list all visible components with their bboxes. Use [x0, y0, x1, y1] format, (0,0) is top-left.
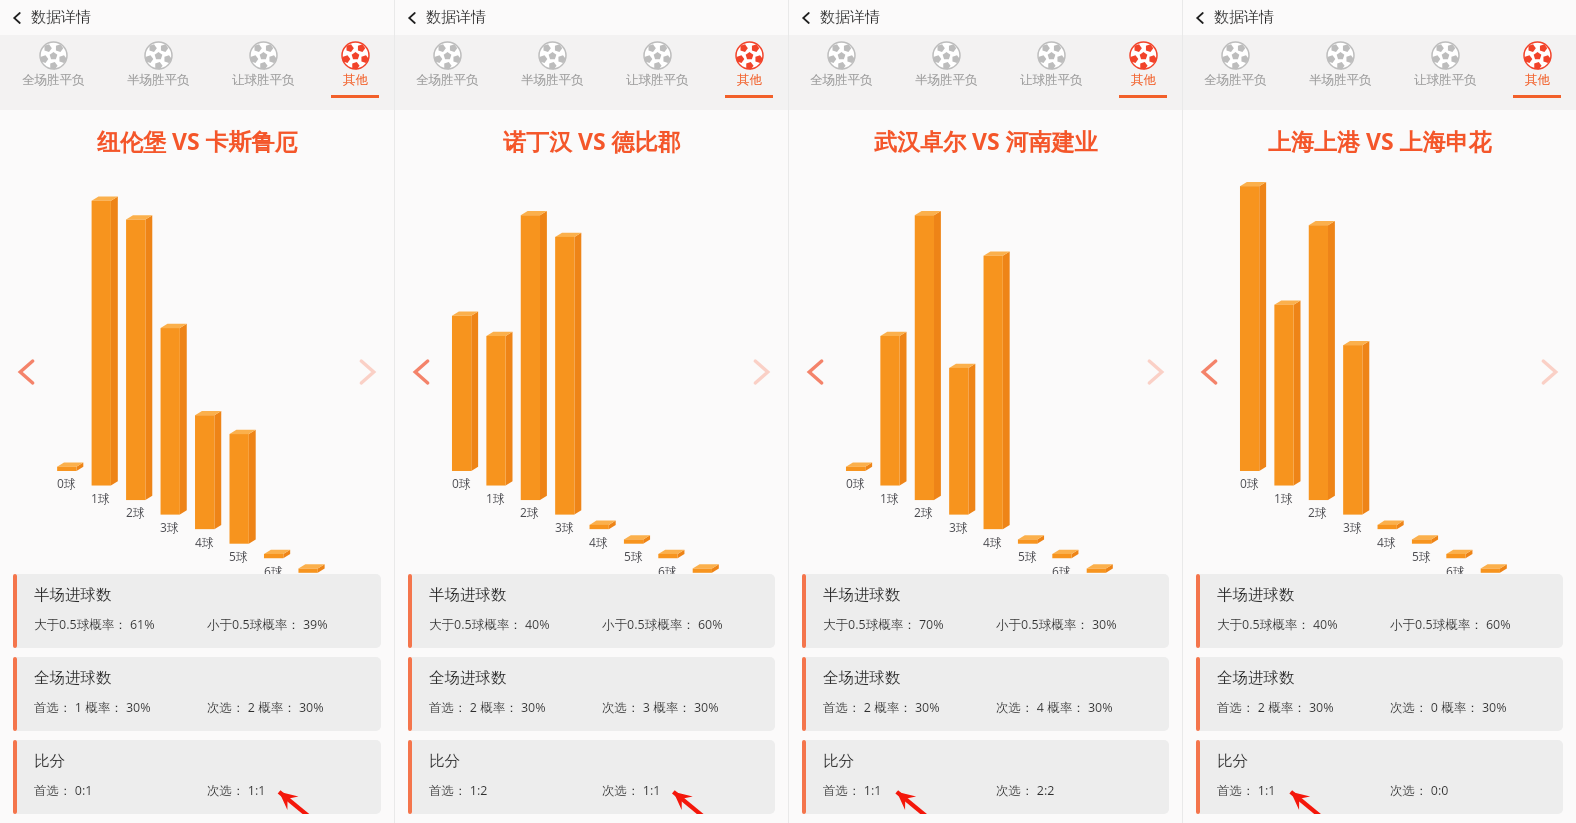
- button[interactable]: Back: [395, 3, 498, 32]
- button[interactable]: 全场胜平负: [1183, 35, 1288, 110]
- button[interactable]: Next: [346, 351, 388, 393]
- button[interactable]: 全场进球数: [1196, 657, 1563, 731]
- staticText: 全场进球数: [823, 668, 901, 688]
- staticText: 首选： 2 概率： 30%: [823, 699, 940, 716]
- staticText: 让球胜平负: [1020, 72, 1083, 88]
- staticText: 首选： 1:2: [429, 782, 488, 799]
- staticText: 0球: [452, 475, 471, 491]
- staticText: 全场进球数: [429, 668, 507, 688]
- staticText: 6球: [264, 563, 283, 579]
- staticText: 首选： 2 概率： 30%: [429, 699, 546, 716]
- button[interactable]: 其他: [1498, 35, 1576, 110]
- button[interactable]: Back: [1183, 3, 1286, 32]
- button[interactable]: 半场进球数: [1196, 574, 1563, 648]
- button[interactable]: 半场进球数: [408, 574, 775, 648]
- button[interactable]: 全场进球数: [13, 657, 381, 731]
- staticText: 其他: [737, 72, 762, 88]
- staticText: 3球: [160, 519, 179, 535]
- staticText: 次选： 3 概率： 30%: [602, 699, 719, 716]
- button[interactable]: 比分: [1196, 740, 1563, 814]
- button[interactable]: 全场胜平负: [789, 35, 894, 110]
- button[interactable]: 全场进球数: [802, 657, 1169, 731]
- staticText: 6球: [1446, 563, 1465, 579]
- button[interactable]: 让球胜平负: [211, 35, 316, 110]
- staticText: 次选： 1:1: [207, 782, 266, 799]
- button[interactable]: Back: [0, 3, 103, 32]
- button[interactable]: 比分: [802, 740, 1169, 814]
- button[interactable]: Next: [1528, 351, 1570, 393]
- button[interactable]: 半场进球数: [802, 574, 1169, 648]
- button[interactable]: 让球胜平负: [1393, 35, 1498, 110]
- staticText: 半场进球数: [429, 585, 507, 605]
- button[interactable]: 比分: [408, 740, 775, 814]
- button[interactable]: 其他: [1104, 35, 1182, 110]
- button[interactable]: Previous: [1189, 351, 1231, 393]
- staticText: 让球胜平负: [1414, 72, 1477, 88]
- button[interactable]: Previous: [401, 351, 443, 393]
- staticText: 首选： 1 概率： 30%: [34, 699, 151, 716]
- other: Back: [1195, 13, 1205, 23]
- staticText: 全场胜平负: [22, 72, 85, 88]
- staticText: 2球: [914, 504, 933, 520]
- other: Back: [12, 13, 22, 23]
- button[interactable]: 全场胜平负: [0, 35, 106, 110]
- staticText: 2球: [1308, 504, 1327, 520]
- staticText: 首选： 1:1: [1217, 782, 1276, 799]
- staticText: 5球: [229, 548, 248, 564]
- staticText: 小于0.5球概率： 30%: [996, 616, 1117, 633]
- staticText: 5球: [1412, 548, 1431, 564]
- staticText: 半场进球数: [34, 585, 112, 605]
- button[interactable]: 让球胜平负: [999, 35, 1104, 110]
- button[interactable]: Next: [740, 351, 782, 393]
- button[interactable]: 其他: [710, 35, 788, 110]
- staticText: 半场胜平负: [521, 72, 584, 88]
- staticText: 半场进球数: [1217, 585, 1295, 605]
- staticText: 4球: [589, 534, 608, 550]
- staticText: 次选： 2 概率： 30%: [207, 699, 324, 716]
- button[interactable]: 让球胜平负: [605, 35, 710, 110]
- staticText: 5球: [624, 548, 643, 564]
- staticText: 大于0.5球概率： 40%: [1217, 616, 1338, 633]
- staticText: 1球: [486, 490, 505, 506]
- staticText: 数据详情: [31, 8, 91, 27]
- button[interactable]: Back: [789, 3, 892, 32]
- button[interactable]: 半场胜平负: [500, 35, 605, 110]
- staticText: 比分: [429, 751, 460, 771]
- staticText: 次选： 4 概率： 30%: [996, 699, 1113, 716]
- button[interactable]: 比分: [13, 740, 381, 814]
- button[interactable]: 半场进球数: [13, 574, 381, 648]
- button[interactable]: 半场胜平负: [894, 35, 999, 110]
- staticText: 次选： 1:1: [602, 782, 661, 799]
- button[interactable]: 半场胜平负: [106, 35, 211, 110]
- staticText: 诺丁汉 VS 德比郡: [503, 125, 681, 156]
- staticText: 3球: [1343, 519, 1362, 535]
- button[interactable]: 全场胜平负: [395, 35, 500, 110]
- staticText: 半场胜平负: [915, 72, 978, 88]
- button[interactable]: Previous: [795, 351, 837, 393]
- staticText: 3球: [949, 519, 968, 535]
- button[interactable]: Previous: [6, 351, 48, 393]
- button[interactable]: 半场胜平负: [1288, 35, 1393, 110]
- staticText: 次选： 0 概率： 30%: [1390, 699, 1507, 716]
- staticText: 比分: [34, 751, 65, 771]
- staticText: 比分: [1217, 751, 1248, 771]
- staticText: 首选： 0:1: [34, 782, 93, 799]
- staticText: 2球: [520, 504, 539, 520]
- staticText: 5球: [1018, 548, 1037, 564]
- button[interactable]: 其他: [316, 35, 394, 110]
- button[interactable]: Next: [1134, 351, 1176, 393]
- staticText: 半场胜平负: [1309, 72, 1372, 88]
- staticText: 半场进球数: [823, 585, 901, 605]
- button[interactable]: 全场进球数: [408, 657, 775, 731]
- staticText: 上海上港 VS 上海申花: [1268, 125, 1492, 156]
- staticText: 全场胜平负: [810, 72, 873, 88]
- staticText: 首选： 2 概率： 30%: [1217, 699, 1334, 716]
- staticText: 3球: [555, 519, 574, 535]
- staticText: 1球: [1274, 490, 1293, 506]
- staticText: 小于0.5球概率： 39%: [207, 616, 328, 633]
- staticText: 其他: [1525, 72, 1550, 88]
- staticText: 大于0.5球概率： 61%: [34, 616, 155, 633]
